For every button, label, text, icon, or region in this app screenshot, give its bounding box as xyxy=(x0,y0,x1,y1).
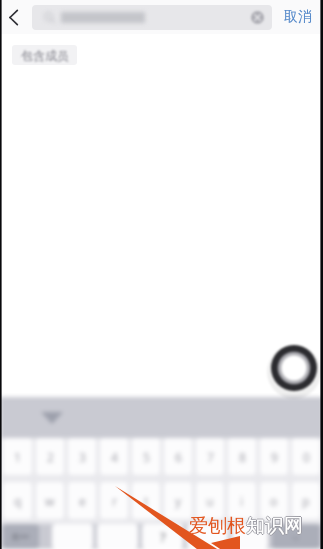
button[interactable]: ? xyxy=(142,524,183,549)
staticText: 1 xyxy=(14,449,21,465)
staticText: 包含成员 xyxy=(21,48,69,63)
button[interactable]: y xyxy=(164,482,192,519)
staticText: i xyxy=(240,493,244,509)
button[interactable]: 3 xyxy=(68,438,96,475)
button[interactable]: Clear text xyxy=(32,5,272,30)
button[interactable]: 包含成员 xyxy=(12,45,77,65)
button[interactable]: 1 xyxy=(3,438,32,475)
staticText: 7 xyxy=(207,449,214,465)
staticText: q xyxy=(14,493,22,509)
button[interactable] xyxy=(187,524,228,549)
button[interactable]: r xyxy=(100,482,128,519)
staticText: ⌵ xyxy=(292,532,300,542)
button[interactable]: 9 xyxy=(260,438,288,475)
staticText: e xyxy=(79,493,86,509)
staticText: 9 xyxy=(271,449,278,465)
button[interactable]: Back xyxy=(0,0,32,34)
staticText: 知识网 xyxy=(246,513,303,537)
button[interactable] xyxy=(97,524,138,549)
staticText: y xyxy=(175,493,182,509)
button[interactable]: 4 xyxy=(100,438,128,475)
button[interactable]: e xyxy=(68,482,96,519)
staticText: ? xyxy=(160,528,166,546)
staticText: 符+= xyxy=(12,531,30,542)
staticText: 3 xyxy=(79,449,86,465)
button[interactable] xyxy=(52,524,93,549)
staticText: 爱刨根 xyxy=(189,514,246,538)
staticText: 8 xyxy=(239,449,246,465)
button[interactable]: t xyxy=(132,482,160,519)
staticText: u xyxy=(206,493,214,509)
button[interactable] xyxy=(232,524,268,549)
staticText: 知识网 xyxy=(246,515,303,539)
button[interactable]: u xyxy=(196,482,224,519)
button[interactable]: o xyxy=(260,482,288,519)
button[interactable]: 7 xyxy=(196,438,224,475)
staticText: 知识网 xyxy=(245,514,302,538)
button[interactable]: Clear text xyxy=(251,11,264,24)
staticText: 知识网 xyxy=(246,514,303,538)
staticText: p xyxy=(302,493,310,509)
button[interactable]: w xyxy=(36,482,64,519)
button[interactable]: q xyxy=(3,482,32,519)
button[interactable]: i xyxy=(228,482,256,519)
button[interactable]: 2 xyxy=(36,438,64,475)
button[interactable]: Enter xyxy=(272,524,320,549)
button[interactable]: 符+= xyxy=(3,524,39,549)
button[interactable]: 8 xyxy=(228,438,256,475)
staticText: 取消 xyxy=(284,8,312,26)
button[interactable]: Hide keyboard xyxy=(41,412,63,424)
staticText: 5 xyxy=(143,449,150,465)
staticText: o xyxy=(270,493,278,509)
staticText: 2 xyxy=(47,449,54,465)
button[interactable]: 0 xyxy=(292,438,320,475)
button[interactable]: 取消 xyxy=(272,0,323,34)
staticText: t xyxy=(144,493,149,509)
staticText: w xyxy=(45,493,55,509)
staticText: 0 xyxy=(303,449,310,465)
staticText: 6 xyxy=(175,449,182,465)
button[interactable]: 6 xyxy=(164,438,192,475)
staticText: r xyxy=(112,493,117,509)
staticText: 知识网 xyxy=(247,514,304,538)
button[interactable]: p xyxy=(292,482,320,519)
button[interactable]: 5 xyxy=(132,438,160,475)
staticText: 4 xyxy=(111,449,118,465)
